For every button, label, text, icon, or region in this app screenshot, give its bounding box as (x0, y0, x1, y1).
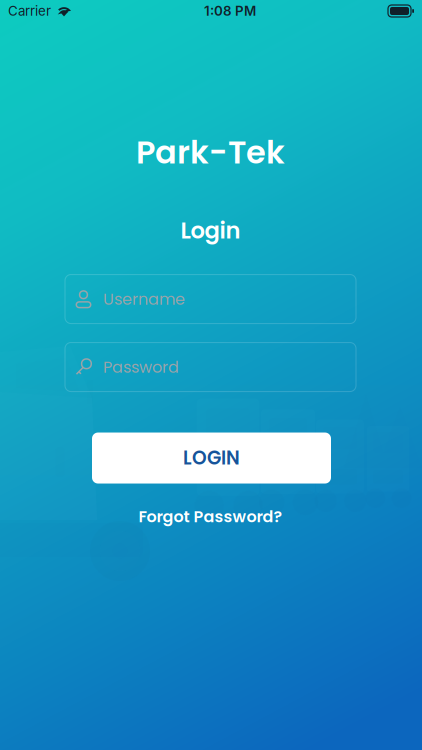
staticText: Password (103, 356, 179, 378)
staticText: 1:08 PM (204, 3, 256, 19)
staticText: LOGIN (183, 445, 240, 471)
button[interactable]: Username (65, 274, 356, 323)
staticText: Forgot Password? (138, 505, 282, 528)
button[interactable]: Password (65, 342, 356, 391)
staticText: Username (103, 288, 185, 310)
staticText: Park-Tek (136, 130, 285, 175)
button[interactable]: LOGIN (92, 432, 331, 483)
staticText: Carrier (8, 3, 51, 19)
staticText: Login (180, 215, 240, 246)
button[interactable]: Forgot Password? (138, 505, 282, 528)
